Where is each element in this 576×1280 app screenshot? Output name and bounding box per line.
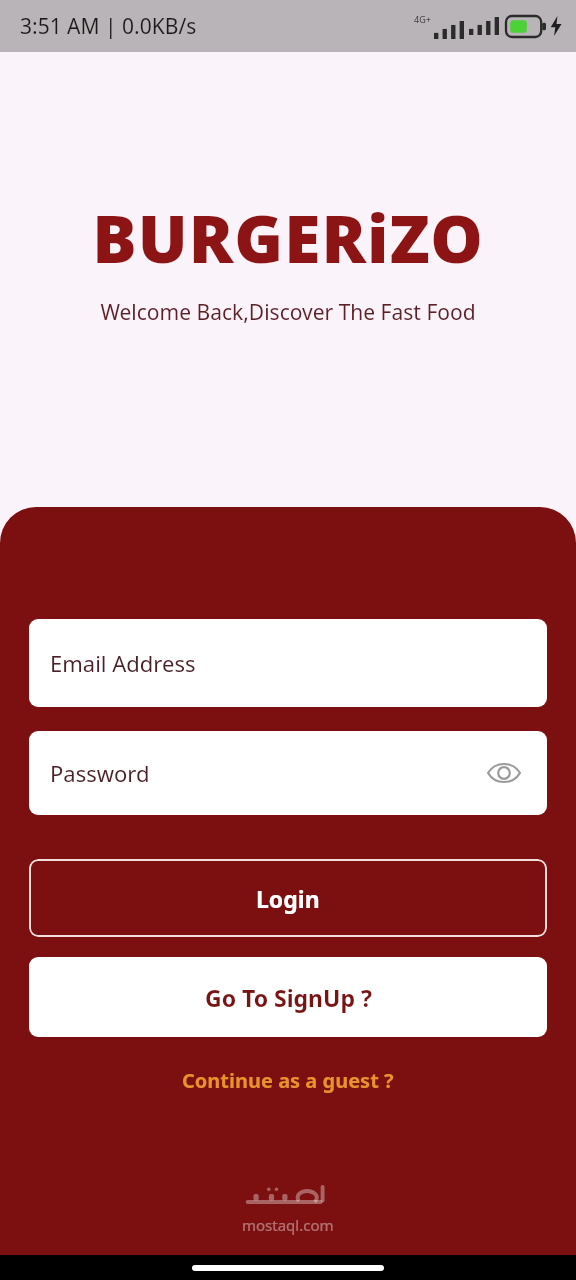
staticText: mostaql.com bbox=[242, 1215, 334, 1235]
button[interactable]: Go To SignUp ? bbox=[29, 957, 547, 1037]
staticText: BURGERiZO bbox=[92, 192, 484, 282]
button[interactable]: Continue as a guest ? bbox=[29, 1058, 547, 1102]
staticText: Go To SignUp ? bbox=[205, 982, 372, 1013]
button[interactable]: Password bbox=[29, 731, 547, 815]
staticText: Email Address bbox=[50, 648, 196, 678]
staticText: Continue as a guest ? bbox=[182, 1067, 394, 1094]
staticText: Password bbox=[50, 758, 150, 788]
button[interactable]: Email Address bbox=[29, 619, 547, 707]
button[interactable]: Login bbox=[29, 859, 547, 937]
staticText: 4G+ bbox=[414, 13, 431, 25]
staticText: Welcome Back,Discover The Fast Food bbox=[100, 298, 476, 327]
staticText: Login bbox=[256, 883, 320, 914]
staticText: 3:51 AM | 0.0KB/s bbox=[20, 12, 197, 41]
button[interactable]: Show password bbox=[482, 751, 526, 795]
